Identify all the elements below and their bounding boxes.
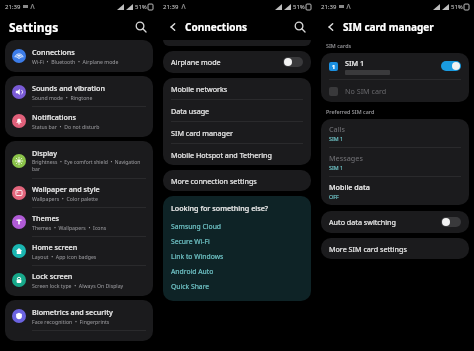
- staticText: Wallpaper and style: [32, 184, 100, 194]
- button[interactable]: Toggle on: [441, 61, 461, 71]
- button[interactable]: Link to Windows: [171, 249, 303, 264]
- button[interactable]: Data usage: [163, 100, 311, 121]
- button[interactable]: More SIM card settings: [321, 238, 469, 259]
- staticText: Quick Share: [171, 282, 210, 291]
- staticText: 51%: [293, 3, 305, 11]
- staticText: Display: [32, 148, 57, 158]
- staticText: Samsung Cloud: [171, 222, 222, 231]
- button[interactable]: Messages: [321, 148, 469, 176]
- staticText: Brightness • Eye comfort shield • Naviga…: [32, 159, 146, 173]
- button[interactable]: Airplane mode: [163, 51, 311, 73]
- staticText: SIM card manager: [343, 20, 434, 34]
- staticText: Sound mode • Ringtone: [32, 94, 93, 101]
- staticText: Themes • Wallpapers • Icons: [32, 224, 107, 231]
- button[interactable]: Display: [5, 143, 153, 178]
- staticText: More SIM card settings: [329, 244, 461, 254]
- button[interactable]: Toggle off: [283, 57, 303, 67]
- button[interactable]: Calls: [321, 119, 469, 147]
- button[interactable]: Auto data switching: [321, 211, 469, 233]
- staticText: Mobile Hotspot and Tethering: [171, 150, 303, 160]
- staticText: 21:39: [163, 3, 179, 11]
- staticText: Wallpapers • Color palette: [32, 195, 98, 202]
- staticText: Sounds and vibration: [32, 83, 105, 93]
- staticText: Connections: [185, 20, 247, 34]
- staticText: Mobile networks: [171, 84, 303, 94]
- staticText: 51%: [451, 3, 463, 11]
- button[interactable]: Wallpaper and style: [5, 179, 153, 207]
- button[interactable]: More connection settings: [163, 170, 311, 191]
- staticText: Calls: [329, 124, 346, 134]
- button[interactable]: Home screen: [5, 237, 153, 265]
- staticText: 1: [332, 63, 336, 70]
- staticText: Layout • App icon badges: [32, 253, 97, 260]
- staticText: Face recognition • Fingerprints: [32, 318, 110, 325]
- staticText: Secure Wi-Fi: [171, 237, 210, 246]
- staticText: SIM 1: [329, 135, 344, 142]
- button[interactable]: Secure Wi-Fi: [171, 234, 303, 249]
- staticText: 51%: [135, 3, 147, 11]
- staticText: 21:39: [321, 3, 337, 11]
- staticText: More connection settings: [171, 176, 303, 186]
- staticText: Data usage: [171, 106, 303, 116]
- button[interactable]: Mobile networks: [163, 78, 311, 99]
- staticText: Preferred SIM card: [326, 108, 375, 115]
- button[interactable]: Back: [166, 20, 180, 34]
- staticText: 21:39: [5, 3, 21, 11]
- staticText: Home screen: [32, 242, 78, 252]
- button[interactable]: Samsung Cloud: [171, 219, 303, 234]
- staticText: SIM card manager: [171, 128, 303, 138]
- button[interactable]: Mobile Hotspot and Tethering: [163, 144, 311, 165]
- staticText: Settings: [9, 19, 59, 35]
- staticText: Airplane mode: [171, 57, 283, 67]
- button[interactable]: Lock screen: [5, 266, 153, 294]
- staticText: Screen lock type • Always On Display: [32, 282, 124, 289]
- staticText: Android Auto: [171, 267, 214, 276]
- button[interactable]: SIM card manager: [163, 122, 311, 143]
- button[interactable]: Sounds and vibration: [5, 78, 153, 106]
- button[interactable]: No SIM card: [321, 80, 469, 102]
- staticText: Themes: [32, 213, 60, 223]
- button[interactable]: Biometrics and security: [5, 302, 153, 330]
- staticText: Mobile data: [329, 182, 370, 192]
- staticText: Status bar • Do not disturb: [32, 123, 100, 130]
- button[interactable]: Search: [133, 19, 149, 35]
- staticText: Messages: [329, 153, 363, 163]
- staticText: Looking for something else?: [171, 203, 269, 213]
- staticText: Wi-Fi • Bluetooth • Airplane mode: [32, 58, 119, 65]
- button[interactable]: Android Auto: [171, 264, 303, 279]
- staticText: OFF: [329, 193, 339, 200]
- staticText: SIM cards: [326, 42, 352, 49]
- staticText: Connections: [32, 47, 75, 57]
- staticText: Biometrics and security: [32, 307, 113, 317]
- button[interactable]: Toggle off: [441, 217, 461, 227]
- button[interactable]: Back: [324, 20, 338, 34]
- staticText: Auto data switching: [329, 217, 441, 227]
- staticText: No SIM card: [345, 86, 387, 96]
- button[interactable]: Notifications: [5, 107, 153, 135]
- staticText: SIM 1: [329, 164, 344, 171]
- button[interactable]: Connections: [5, 42, 153, 70]
- button[interactable]: Mobile data: [321, 177, 469, 205]
- staticText: Notifications: [32, 112, 76, 122]
- staticText: Link to Windows: [171, 252, 224, 261]
- staticText: SIM 1: [345, 58, 365, 68]
- button[interactable]: Search: [292, 19, 308, 35]
- button[interactable]: 1: [321, 53, 469, 79]
- staticText: Lock screen: [32, 271, 73, 281]
- button[interactable]: Themes: [5, 208, 153, 236]
- button[interactable]: Quick Share: [171, 279, 303, 294]
